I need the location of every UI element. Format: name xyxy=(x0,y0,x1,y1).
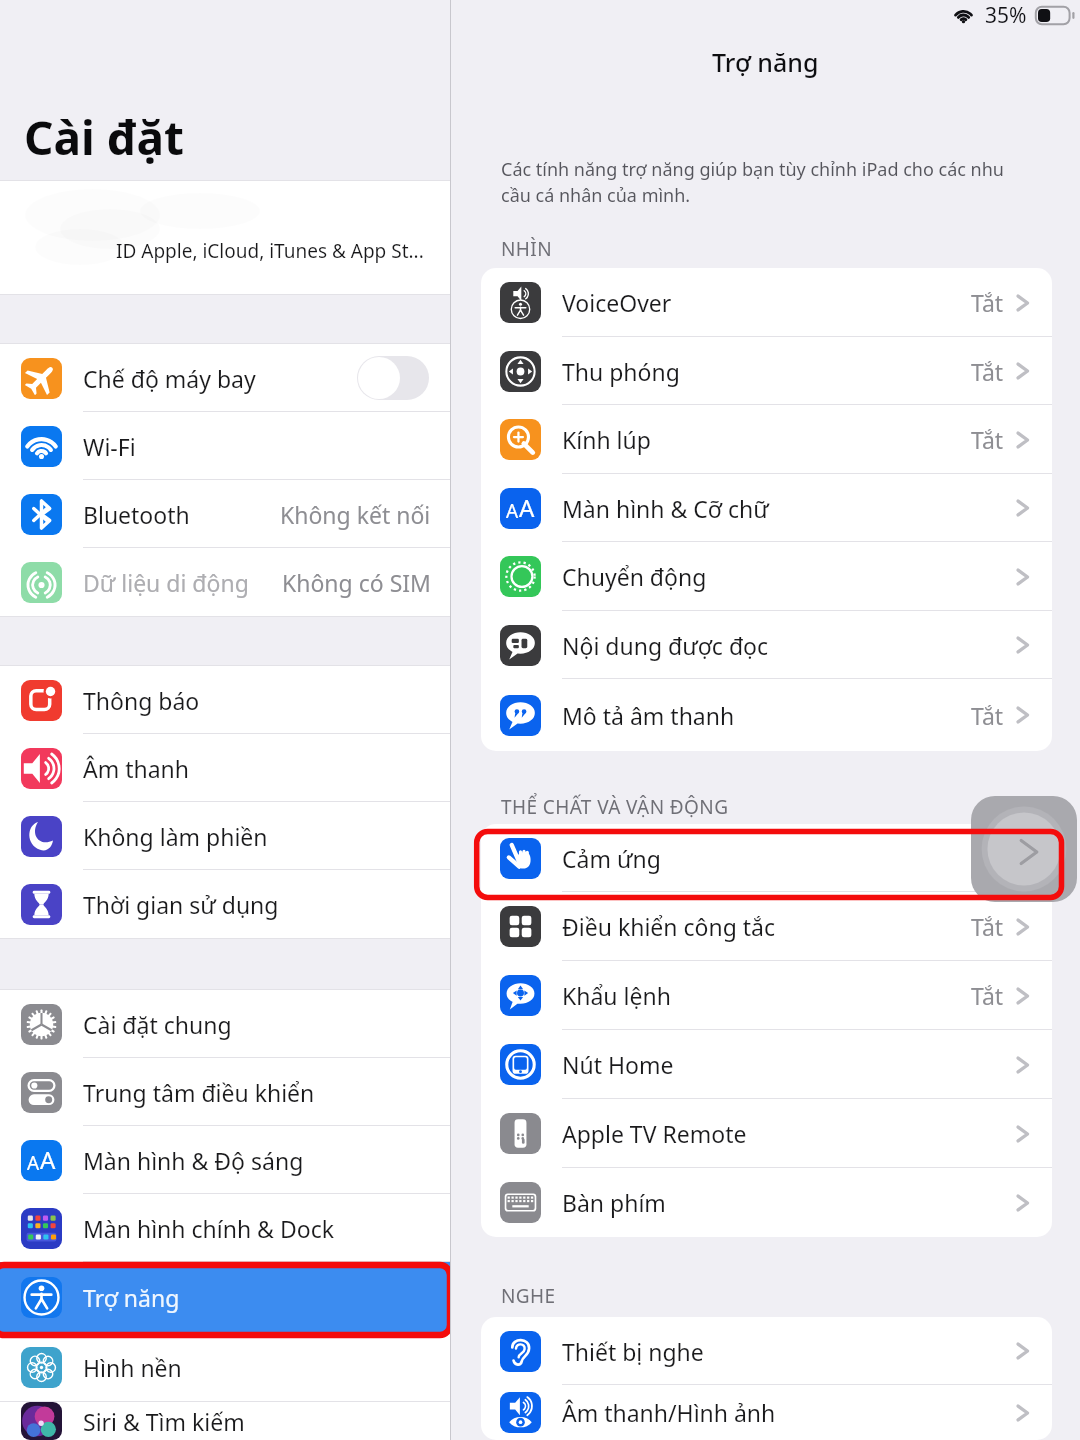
staticText: Tắt xyxy=(971,911,1004,942)
button[interactable]: Nội dung được đọc xyxy=(481,611,1052,679)
button[interactable]: Kính lúp xyxy=(481,405,1052,474)
staticText: Mô tả âm thanh xyxy=(562,700,735,731)
staticText: NGHE xyxy=(501,1283,556,1309)
button[interactable]: Thu phóng xyxy=(481,337,1052,405)
button[interactable]: Cài đặt chung xyxy=(0,990,450,1058)
staticText: 35% xyxy=(985,1,1027,30)
staticText: Không kết nối xyxy=(280,499,431,530)
staticText: A xyxy=(40,1143,56,1176)
button[interactable]: Nút Home xyxy=(481,1030,1052,1099)
staticText: Nút Home xyxy=(562,1049,674,1080)
button[interactable]: Khẩu lệnh xyxy=(481,961,1052,1030)
staticText: Thông báo xyxy=(83,685,200,716)
staticText: A xyxy=(506,498,519,524)
staticText: Chế độ máy bay xyxy=(83,363,256,394)
staticText: Âm thanh xyxy=(83,753,190,784)
staticText: Không có SIM xyxy=(282,567,431,598)
staticText: Bàn phím xyxy=(562,1187,666,1218)
staticText: Điều khiển công tắc xyxy=(562,911,776,942)
staticText: Trung tâm điều khiển xyxy=(83,1077,315,1108)
button[interactable]: Chuyển động xyxy=(481,542,1052,611)
staticText: Tắt xyxy=(971,287,1004,318)
staticText: Tắt xyxy=(971,980,1004,1011)
button[interactable]: Mô tả âm thanh xyxy=(481,679,1052,751)
button[interactable]: Bàn phím xyxy=(481,1168,1052,1237)
staticText: A xyxy=(519,491,535,524)
button[interactable]: Cảm ứng xyxy=(481,824,1052,892)
staticText: Tắt xyxy=(971,700,1004,731)
button[interactable]: Thiết bị nghe xyxy=(481,1317,1052,1385)
button[interactable]: Wi-Fi xyxy=(0,412,450,480)
staticText: Màn hình & Cỡ chữ xyxy=(562,493,769,524)
button[interactable]: AssistiveTouch xyxy=(971,796,1077,902)
staticText: NHÌN xyxy=(501,236,553,262)
staticText: Âm thanh/Hình ảnh xyxy=(562,1397,776,1428)
staticText: Tắt xyxy=(971,424,1004,455)
staticText: Trợ năng xyxy=(712,45,819,79)
button[interactable]: A xyxy=(0,1126,450,1194)
staticText: Wi-Fi xyxy=(83,431,136,462)
staticText: Trợ năng xyxy=(83,1282,180,1313)
staticText: Cài đặt xyxy=(24,106,184,169)
button[interactable]: Trung tâm điều khiển xyxy=(0,1058,450,1126)
button[interactable]: VoiceOver xyxy=(481,268,1052,337)
staticText: Cảm ứng xyxy=(562,843,661,874)
staticText: Khẩu lệnh xyxy=(562,980,671,1011)
staticText: Thiết bị nghe xyxy=(562,1336,704,1367)
button[interactable]: Âm thanh xyxy=(0,734,450,802)
button[interactable]: Thời gian sử dụng xyxy=(0,870,450,938)
staticText: Thời gian sử dụng xyxy=(83,889,279,920)
staticText: Cài đặt chung xyxy=(83,1009,232,1040)
staticText: Apple TV Remote xyxy=(562,1118,747,1149)
staticText: Các tính năng trợ năng giúp bạn tùy chỉn… xyxy=(501,157,1015,208)
staticText: Siri & Tìm kiếm xyxy=(83,1406,245,1437)
staticText: A xyxy=(27,1150,40,1176)
button[interactable]: Thông báo xyxy=(0,666,450,734)
staticText: Không làm phiền xyxy=(83,821,268,852)
button[interactable]: ID Apple, iCloud, iTunes & App St... xyxy=(0,181,450,294)
button[interactable]: A xyxy=(481,474,1052,542)
button[interactable]: Trợ năng xyxy=(0,1262,450,1333)
button[interactable]: Dữ liệu di động xyxy=(0,548,450,616)
other: Battery 35 percent xyxy=(1035,6,1075,25)
other: Wi-Fi xyxy=(950,5,977,25)
button[interactable]: Siri & Tìm kiếm xyxy=(0,1402,450,1440)
staticText: Hình nền xyxy=(83,1352,182,1383)
staticText: Dữ liệu di động xyxy=(83,567,249,598)
staticText: Màn hình chính & Dock xyxy=(83,1213,334,1244)
button[interactable]: Chế độ máy bay xyxy=(0,344,450,412)
button[interactable]: Hình nền xyxy=(0,1333,450,1401)
button[interactable]: Apple TV Remote xyxy=(481,1099,1052,1168)
button[interactable]: Không làm phiền xyxy=(0,802,450,870)
button[interactable]: Màn hình chính & Dock xyxy=(0,1194,450,1262)
staticText: THỂ CHẤT VÀ VẬN ĐỘNG xyxy=(501,794,729,820)
staticText: VoiceOver xyxy=(562,287,672,318)
staticText: Bluetooth xyxy=(83,499,190,530)
staticText: Kính lúp xyxy=(562,424,651,455)
button[interactable]: Bluetooth xyxy=(0,480,450,548)
staticText: Tắt xyxy=(971,356,1004,387)
button[interactable]: Airplane mode toggle xyxy=(357,356,429,400)
staticText: ID Apple, iCloud, iTunes & App St... xyxy=(116,238,424,264)
staticText: Thu phóng xyxy=(562,356,680,387)
staticText: Nội dung được đọc xyxy=(562,630,769,661)
button[interactable]: Điều khiển công tắc xyxy=(481,892,1052,961)
staticText: Chuyển động xyxy=(562,561,707,592)
staticText: Màn hình & Độ sáng xyxy=(83,1145,304,1176)
button[interactable]: Âm thanh/Hình ảnh xyxy=(481,1385,1052,1440)
